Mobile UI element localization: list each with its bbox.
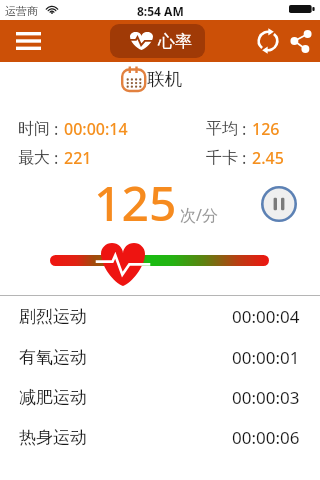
button[interactable]: 联机 bbox=[120, 66, 182, 92]
staticText: 00:00:04 bbox=[232, 305, 300, 328]
staticText: 平均 bbox=[206, 119, 238, 139]
staticText: 221 bbox=[64, 147, 92, 169]
staticText: 次/分 bbox=[180, 204, 218, 226]
staticText: : bbox=[242, 147, 247, 169]
staticText: 00:00:14 bbox=[64, 118, 128, 140]
staticText: 减肥运动 bbox=[19, 387, 87, 408]
staticText: 125 bbox=[94, 170, 177, 235]
button[interactable]: 有氧运动 bbox=[0, 337, 320, 377]
staticText: 2.45 bbox=[252, 147, 284, 169]
staticText: 心率 bbox=[158, 31, 192, 52]
button[interactable]: Share bbox=[286, 20, 316, 62]
button[interactable]: 减肥运动 bbox=[0, 377, 320, 417]
staticText: 有氧运动 bbox=[19, 347, 87, 368]
staticText: : bbox=[54, 118, 59, 140]
staticText: 时间 bbox=[18, 119, 50, 139]
staticText: 126 bbox=[252, 118, 280, 140]
staticText: 8:54 AM bbox=[137, 3, 184, 19]
button[interactable]: Refresh bbox=[252, 20, 284, 62]
button[interactable]: Menu bbox=[6, 20, 50, 62]
staticText: 联机 bbox=[147, 68, 182, 90]
button[interactable]: 热身运动 bbox=[0, 417, 320, 457]
staticText: 00:00:01 bbox=[232, 346, 300, 369]
staticText: 00:00:06 bbox=[232, 426, 300, 449]
button[interactable]: 剧烈运动 bbox=[0, 296, 320, 337]
staticText: 运营商 bbox=[5, 4, 38, 18]
staticText: 千卡 bbox=[206, 148, 238, 168]
staticText: 剧烈运动 bbox=[19, 306, 87, 327]
staticText: 热身运动 bbox=[19, 427, 87, 448]
staticText: 00:00:03 bbox=[232, 386, 300, 409]
staticText: : bbox=[54, 147, 59, 169]
staticText: 最大 bbox=[18, 148, 50, 168]
staticText: : bbox=[242, 118, 247, 140]
button[interactable]: 心率 bbox=[110, 24, 205, 58]
button[interactable]: Pause bbox=[261, 186, 297, 222]
